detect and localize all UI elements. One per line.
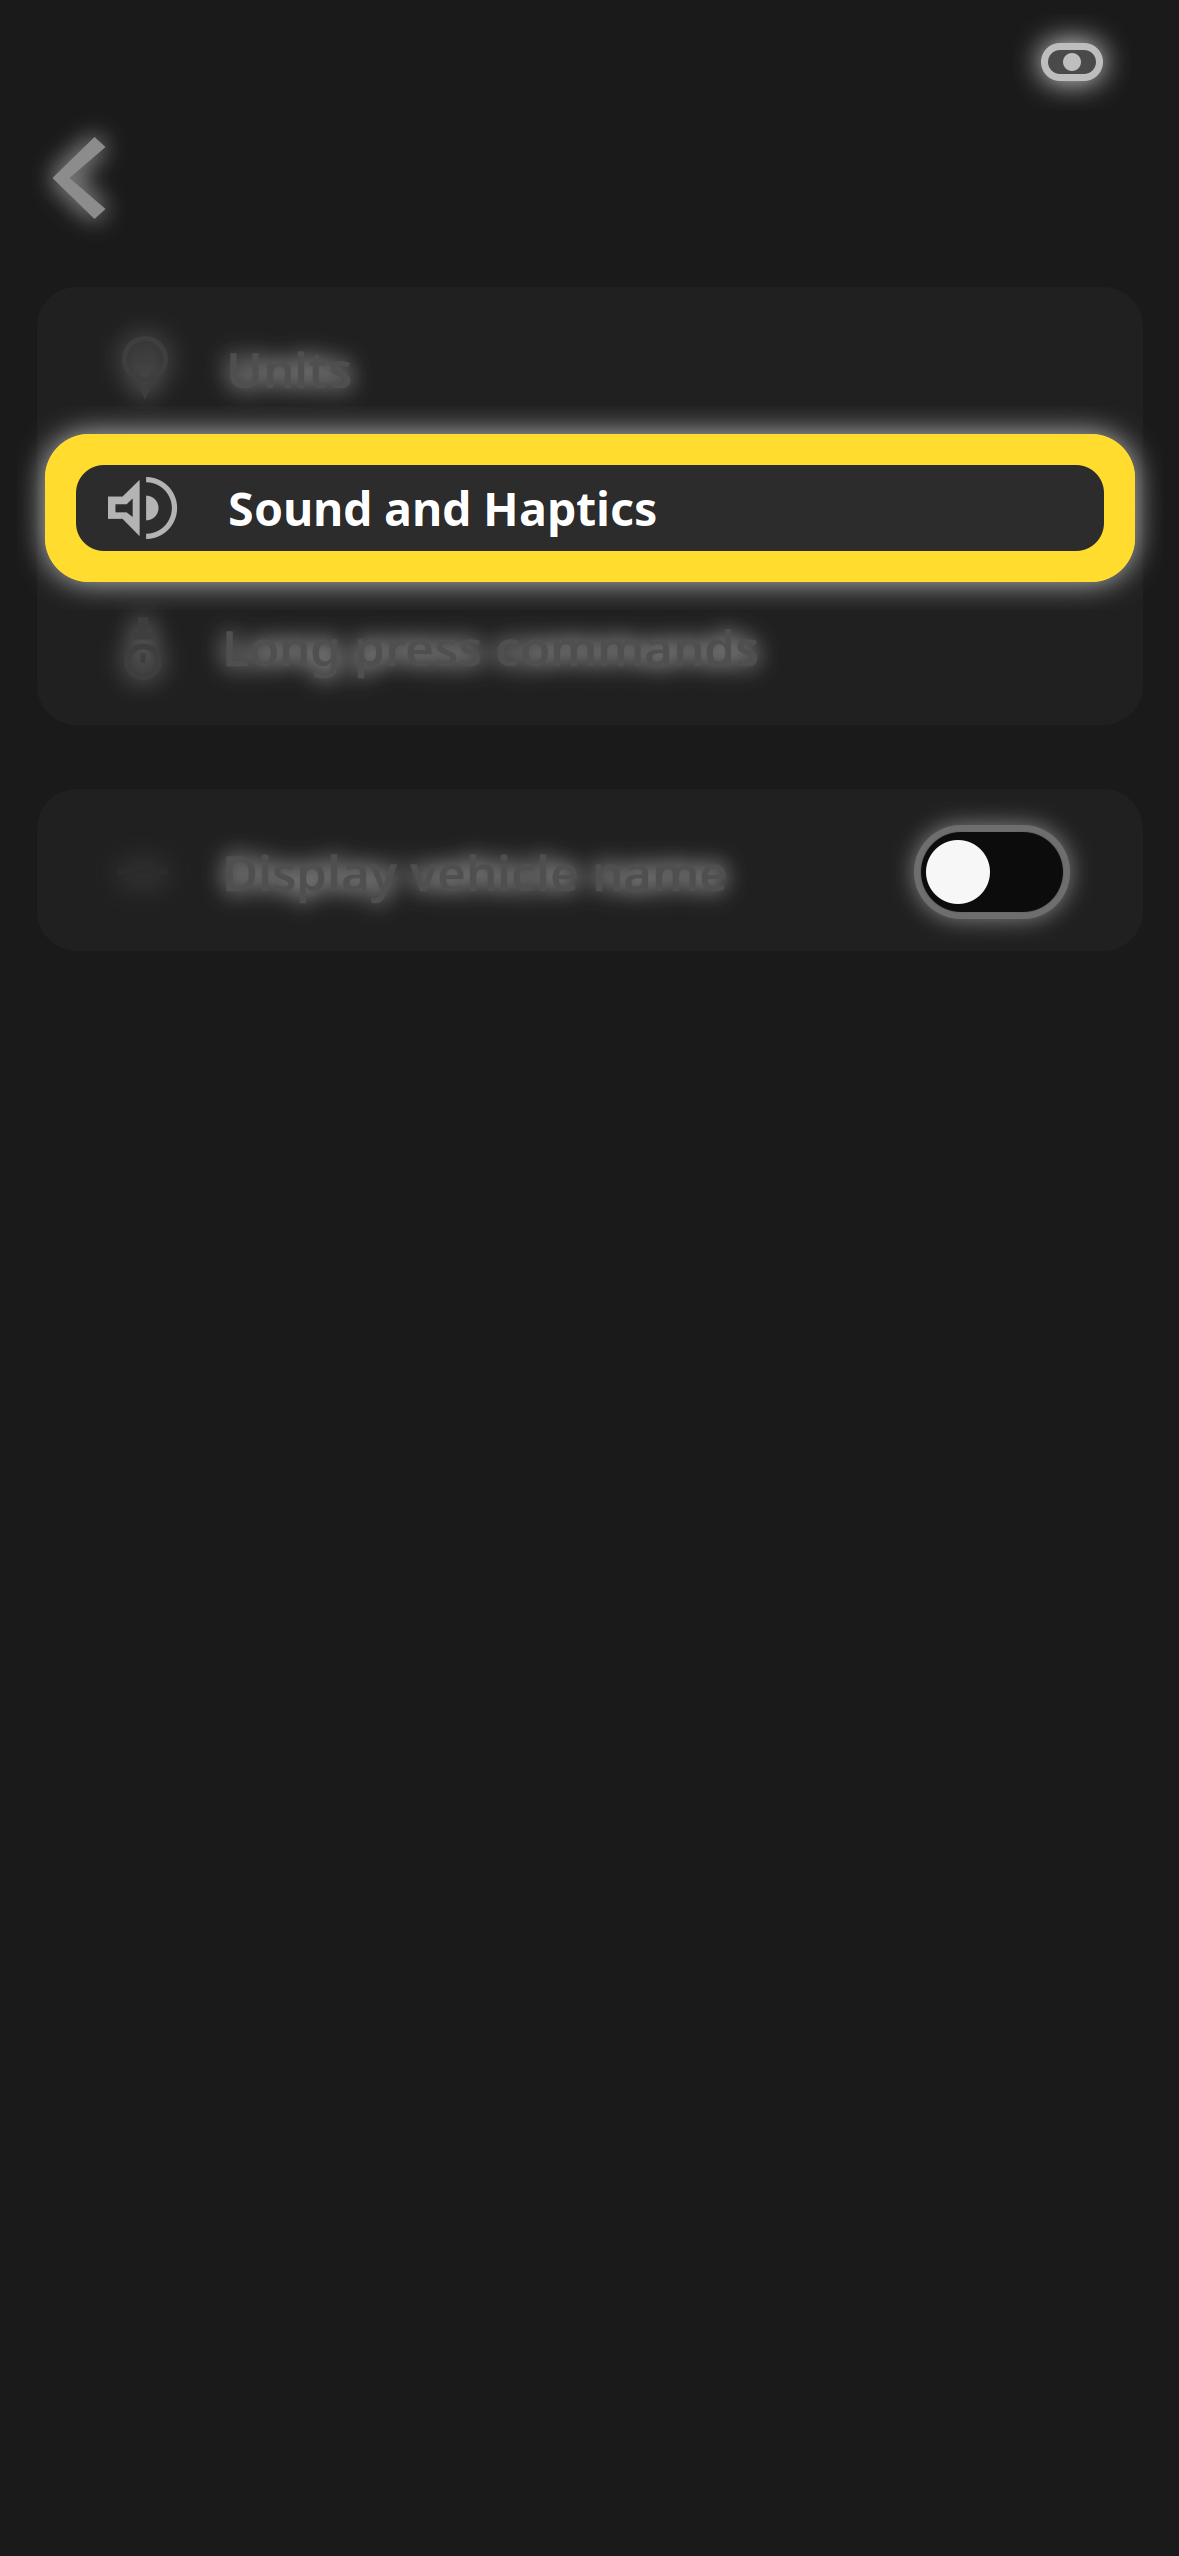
staticText: Units bbox=[226, 336, 352, 402]
button[interactable]: Display vehicle name bbox=[114, 792, 1072, 952]
button[interactable]: Back bbox=[50, 136, 107, 220]
staticText: Long press commands bbox=[222, 614, 759, 680]
staticText: Display vehicle name bbox=[222, 839, 728, 905]
button[interactable]: Sound and Haptics bbox=[76, 465, 1104, 551]
button[interactable]: Visibility bbox=[1041, 42, 1103, 82]
button[interactable]: Units bbox=[112, 296, 1143, 442]
staticText: Sound and Haptics bbox=[228, 477, 657, 539]
button[interactable]: Long press commands bbox=[112, 574, 1143, 720]
